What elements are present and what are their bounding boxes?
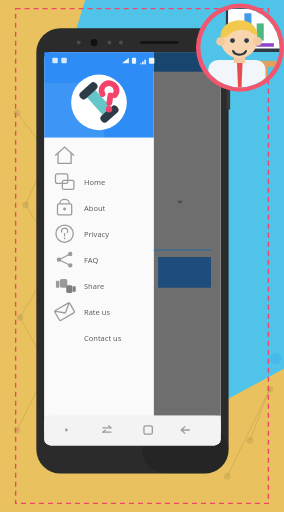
button[interactable]: Profile (196, 4, 284, 92)
button[interactable]: Home (118, 428, 154, 450)
button[interactable]: Back (158, 428, 194, 450)
button[interactable]: Contact us (46, 326, 176, 350)
button[interactable]: Share (46, 274, 176, 298)
staticText: Rate us (84, 307, 110, 317)
button[interactable]: Home (46, 170, 176, 194)
button[interactable]: Recents (78, 428, 114, 450)
staticText: FAQ (84, 255, 99, 265)
button[interactable]: About (46, 196, 176, 220)
button[interactable]: Rate us (46, 300, 176, 324)
staticText: Share (84, 281, 105, 291)
button[interactable]: FAQ (46, 248, 176, 272)
staticText: Privacy (84, 229, 110, 239)
staticText: Home (84, 177, 106, 187)
staticText: About (84, 203, 106, 213)
staticText: Contact us (84, 333, 122, 343)
button[interactable]: Privacy (46, 222, 176, 246)
